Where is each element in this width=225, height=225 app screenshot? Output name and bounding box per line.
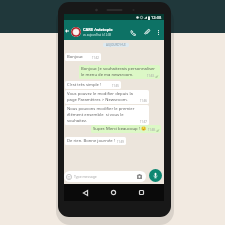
staticText: CARE /wiztopic [83, 27, 113, 32]
staticText: 11:39 [117, 140, 124, 144]
button[interactable]: Home [108, 187, 119, 198]
staticText: 11:36 [140, 99, 147, 103]
button[interactable]: C'est très simple ! [65, 81, 121, 89]
button[interactable]: Record voice message [149, 169, 162, 182]
staticText: 11:38 [148, 128, 155, 132]
staticText: vu aujourd'hui à 12:08 [83, 33, 111, 37]
button[interactable]: Back [62, 26, 72, 36]
button[interactable]: De rien. Bonne journée ! [65, 137, 126, 145]
staticText: page Paramètres > Newsroom. [67, 97, 128, 103]
staticText: C'est très simple ! [67, 82, 102, 88]
button[interactable]: Type message [64, 171, 146, 182]
staticText: Bonjour. Je souhaiterais personnaliser [81, 66, 156, 72]
button[interactable]: Bonjour. [65, 53, 101, 61]
staticText: De rien. Bonne journée ! [67, 138, 115, 144]
button[interactable]: Back [80, 187, 91, 198]
staticText: AUJOURD'HUI [106, 43, 126, 47]
staticText: 11:35 [112, 84, 119, 88]
staticText: Type message [74, 174, 97, 179]
button[interactable]: Vous pouvez le modifier depuis la [65, 90, 149, 104]
button[interactable]: Call [127, 27, 138, 38]
staticText: 11:37 [140, 120, 147, 124]
staticText: Super. Merci beaucoup ! 🙂 [93, 126, 147, 132]
staticText: 11:32 [92, 56, 99, 60]
button[interactable]: Attach [141, 26, 152, 37]
staticText: Vous pouvez le modifier depuis la [67, 91, 133, 97]
staticText: Bonjour. [67, 54, 84, 60]
button[interactable]: More options [154, 28, 163, 37]
button[interactable]: Recent apps [136, 187, 147, 198]
staticText: 11:33 [147, 74, 154, 78]
staticText: 12:08 [151, 15, 162, 20]
staticText: élément ensemble si vous le [67, 112, 124, 118]
staticText: le menu de ma newsroom. [81, 72, 134, 78]
staticText: Nous pouvons modifier le premier [67, 106, 135, 112]
staticText: souhaitez. [67, 118, 88, 124]
button[interactable]: Contact photo [71, 27, 81, 37]
button[interactable]: AUJOURD'HUI [106, 43, 126, 47]
button[interactable]: Super. Merci beaucoup ! 🙂 [91, 125, 161, 133]
button[interactable]: Bonjour. Je souhaiterais personnaliser [79, 65, 160, 79]
button[interactable]: Nous pouvons modifier le premier [65, 105, 149, 125]
